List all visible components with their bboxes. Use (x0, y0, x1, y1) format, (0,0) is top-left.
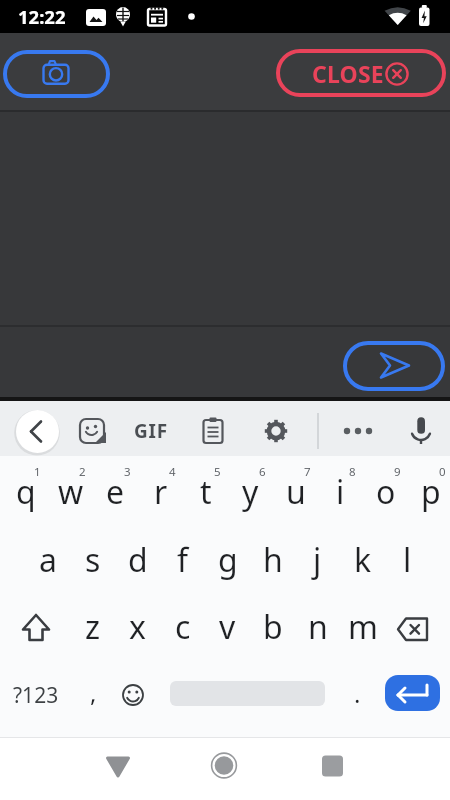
button[interactable]: e (93, 468, 138, 516)
button[interactable]: z (70, 603, 115, 651)
button[interactable]: k (340, 536, 385, 584)
button[interactable]: r (138, 468, 183, 516)
button[interactable] (310, 744, 354, 788)
staticText: n (308, 605, 328, 649)
button[interactable]: f (160, 536, 205, 584)
staticText: w (58, 470, 84, 514)
button[interactable] (16, 410, 59, 453)
staticText: k (354, 538, 372, 582)
button[interactable] (96, 744, 140, 788)
button[interactable]: t (183, 468, 228, 516)
staticText: 9 (394, 464, 401, 480)
button[interactable]: c (160, 603, 205, 651)
staticText: z (85, 605, 101, 649)
staticText: q (16, 470, 36, 514)
button[interactable] (385, 675, 440, 711)
staticText: 6 (259, 464, 266, 480)
button[interactable]: . (335, 669, 380, 717)
staticText: o (376, 470, 396, 514)
button[interactable] (3, 50, 110, 98)
button[interactable]: w (48, 468, 93, 516)
staticText: r (154, 470, 168, 514)
button[interactable] (202, 743, 246, 787)
staticText: j (313, 538, 322, 582)
button[interactable]: b (250, 603, 295, 651)
staticText: g (218, 538, 238, 582)
button[interactable] (193, 409, 233, 453)
button[interactable]: p (408, 468, 450, 516)
staticText: v (219, 605, 236, 649)
staticText: l (403, 538, 412, 582)
staticText: b (263, 605, 283, 649)
staticText: d (128, 538, 148, 582)
button[interactable] (13, 605, 59, 651)
button[interactable]: v (205, 603, 250, 651)
staticText: 3 (124, 464, 131, 480)
staticText: x (129, 605, 146, 649)
button[interactable]: n (295, 603, 340, 651)
staticText: 1 (34, 464, 41, 480)
staticText: 2 (79, 464, 86, 480)
staticText: m (348, 605, 378, 649)
button[interactable]: s (70, 536, 115, 584)
button[interactable] (389, 605, 435, 651)
staticText: . (354, 677, 361, 710)
button[interactable] (110, 671, 156, 719)
button[interactable]: x (115, 603, 160, 651)
button[interactable]: m (340, 603, 385, 651)
button[interactable]: GIF (131, 409, 171, 453)
button[interactable]: i (318, 468, 363, 516)
button[interactable]: o (363, 468, 408, 516)
staticText: GIF (134, 418, 168, 444)
button[interactable]: h (250, 536, 295, 584)
staticText: a (39, 538, 57, 582)
staticText: e (106, 470, 125, 514)
button[interactable]: g (205, 536, 250, 584)
staticText: t (200, 470, 212, 514)
staticText: h (263, 538, 283, 582)
button[interactable]: u (273, 468, 318, 516)
staticText: 0 (439, 464, 446, 480)
button[interactable]: ?123 (13, 671, 59, 719)
button[interactable]: q (3, 468, 48, 516)
button[interactable]: d (115, 536, 160, 584)
staticText: 7 (304, 464, 311, 480)
staticText: f (177, 538, 189, 582)
button[interactable]: j (295, 536, 340, 584)
button[interactable]: l (385, 536, 430, 584)
button[interactable]: y (228, 468, 273, 516)
button[interactable] (256, 409, 296, 453)
button[interactable]: CLOSE (276, 49, 446, 97)
staticText: 8 (349, 464, 356, 480)
staticText: c (175, 605, 191, 649)
button[interactable] (72, 409, 112, 453)
staticText: s (85, 538, 101, 582)
staticText: ?123 (13, 681, 59, 710)
staticText: y (242, 470, 259, 514)
staticText: u (286, 470, 306, 514)
button[interactable] (400, 409, 440, 453)
button[interactable] (343, 341, 445, 391)
staticText: , (90, 676, 97, 709)
button[interactable] (338, 409, 378, 453)
staticText: p (421, 470, 441, 514)
staticText: 5 (214, 464, 221, 480)
staticText: CLOSE (312, 58, 384, 89)
button[interactable]: , (71, 668, 116, 716)
staticText: i (336, 470, 345, 514)
staticText: 12:22 (18, 4, 66, 29)
button[interactable]: a (25, 536, 70, 584)
staticText: 4 (169, 464, 176, 480)
